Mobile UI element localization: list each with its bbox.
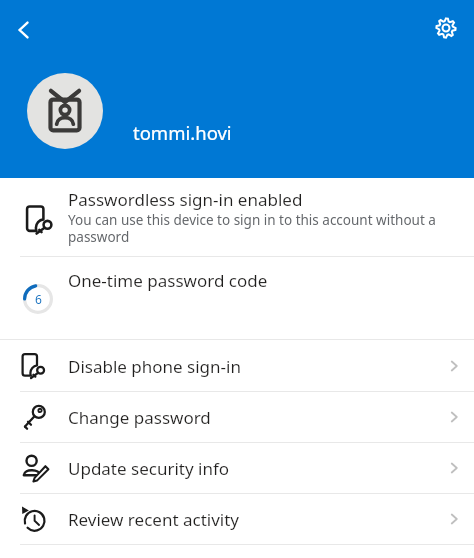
staticText: Passwordless sign-in enabled xyxy=(68,188,303,211)
button[interactable]: Passwordless sign-in enabled xyxy=(0,178,474,256)
button[interactable]: Back xyxy=(2,8,46,52)
staticText: Change password xyxy=(68,406,434,429)
button[interactable]: Disable phone sign-in xyxy=(0,341,474,391)
staticText: tommi.hovi xyxy=(133,120,232,145)
button[interactable]: Review recent activity xyxy=(0,494,474,544)
staticText: One-time password code xyxy=(68,269,268,292)
staticText: Review recent activity xyxy=(68,508,434,531)
button[interactable]: Update security info xyxy=(0,443,474,493)
button[interactable]: 6 xyxy=(0,257,474,339)
button[interactable]: Settings xyxy=(424,6,468,50)
staticText: Disable phone sign-in xyxy=(68,355,434,378)
staticText: Update security info xyxy=(68,457,434,480)
staticText: You can use this device to sign in to th… xyxy=(68,211,458,246)
button[interactable]: Change password xyxy=(0,392,474,442)
staticText: 6 xyxy=(35,291,42,307)
